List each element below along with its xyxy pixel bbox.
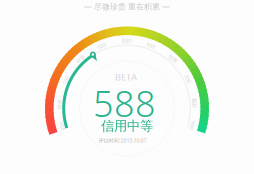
staticText: — 尽微珍贵 重在积累 — <box>84 1 170 12</box>
staticText: 评估时间: 2015.10.07 <box>98 137 146 144</box>
staticText: 优秀 <box>168 55 178 62</box>
staticText: 350 <box>57 123 66 130</box>
staticText: 600 <box>97 42 106 49</box>
staticText: 较差 <box>55 101 65 108</box>
staticText: 中等 <box>75 56 85 63</box>
staticText: 良好 <box>121 38 131 44</box>
staticText: 588 <box>93 79 156 127</box>
staticText: 极好 <box>189 100 199 106</box>
staticText: 650 <box>147 42 156 49</box>
staticText: 550 <box>61 76 70 83</box>
staticText: 900 <box>188 122 197 129</box>
staticText: 信用中等 <box>101 118 153 134</box>
staticText: 700 <box>183 75 192 82</box>
staticText: BETA <box>115 71 137 83</box>
